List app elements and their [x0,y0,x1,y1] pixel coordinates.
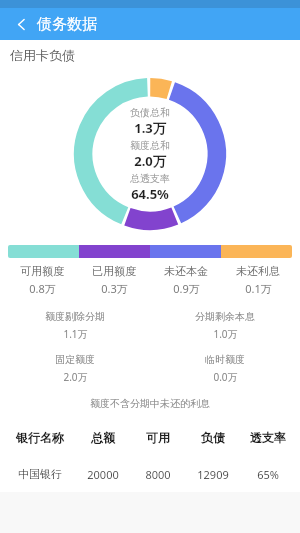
button[interactable]: 未还本金 [150,264,222,296]
staticText: 1.1万 [63,327,88,341]
staticText: 未还本金 [164,264,208,278]
staticText: 可用额度 [20,264,64,278]
staticText: 64.5% [131,185,169,203]
button[interactable]: Back [8,11,34,37]
staticText: 已用额度 [92,264,136,278]
staticText: 中国银行 [18,467,62,481]
staticText: 固定额度 [55,353,95,366]
staticText: 0.3万 [101,281,128,296]
staticText: 65% [257,467,279,482]
staticText: 信用卡负债 [10,47,75,63]
button[interactable]: 可用额度 [6,264,78,296]
staticText: 总额 [91,430,115,445]
staticText: 负债总和 [130,106,170,119]
staticText: 临时额度 [205,353,245,366]
staticText: 可用 [146,430,170,445]
staticText: 8000 [145,467,171,482]
staticText: 未还利息 [236,264,280,278]
button[interactable]: 未还利息 [222,264,294,296]
staticText: 额度总和 [130,139,170,152]
staticText: 总透支率 [130,172,170,185]
staticText: 负债 [201,430,225,445]
staticText: 债务数据 [37,15,97,34]
staticText: 0.8万 [29,281,56,296]
staticText: 额度不含分期中未还的利息 [90,397,210,410]
staticText: 2.0万 [134,152,166,170]
staticText: 分期剩余本息 [195,310,255,323]
staticText: 1.0万 [213,327,238,341]
staticText: 透支率 [250,430,286,445]
staticText: 1.3万 [134,119,166,137]
staticText: 0.1万 [245,281,272,296]
staticText: 0.9万 [173,281,200,296]
staticText: 银行名称 [16,430,64,445]
staticText: 20000 [87,467,119,482]
staticText: 0.0万 [213,370,238,384]
staticText: 2.0万 [63,370,88,384]
button[interactable]: 中国银行 [5,467,295,482]
button[interactable]: 已用额度 [78,264,150,296]
staticText: 12909 [197,467,229,482]
staticText: 额度剔除分期 [45,310,105,323]
